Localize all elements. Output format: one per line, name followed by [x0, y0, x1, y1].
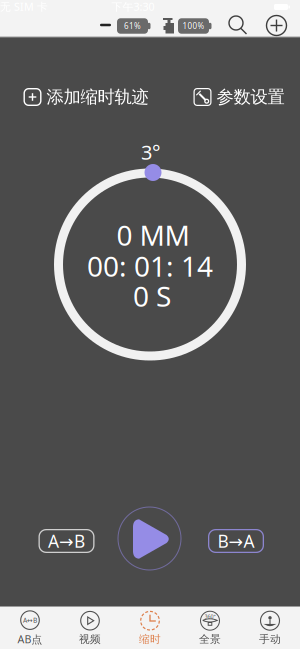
button[interactable]: [117, 506, 181, 570]
button[interactable]: 缩时: [120, 607, 180, 649]
staticText: 3°: [141, 139, 161, 165]
button[interactable]: 视频: [60, 607, 120, 649]
button[interactable]: 手动: [240, 607, 300, 649]
button[interactable]: 360°: [180, 607, 240, 649]
button[interactable]: 添加缩时轨迹: [23, 86, 148, 108]
staticText: 0 S: [133, 277, 171, 315]
staticText: 0 MM: [116, 216, 189, 254]
button[interactable]: B→A: [208, 529, 264, 553]
staticText: 100%: [182, 21, 204, 31]
button[interactable]: 参数设置: [193, 86, 284, 108]
staticText: 无 SIM 卡: [0, 0, 48, 14]
staticText: B→A: [217, 529, 254, 552]
button[interactable]: A↔B: [0, 607, 60, 649]
staticText: 添加缩时轨迹: [46, 86, 148, 108]
button[interactable]: [265, 14, 287, 36]
button[interactable]: A→B: [38, 529, 94, 553]
staticText: A↔B: [23, 616, 37, 625]
staticText: 61%: [124, 21, 141, 31]
staticText: 参数设置: [216, 86, 284, 108]
staticText: 全景: [199, 633, 221, 646]
staticText: 00: 01: 14: [87, 247, 213, 285]
staticText: 下午3:30: [111, 0, 154, 14]
staticText: AB点: [17, 632, 42, 646]
staticText: 视频: [79, 633, 101, 646]
staticText: 360°: [204, 613, 215, 620]
staticText: 缩时: [139, 633, 161, 646]
button[interactable]: [226, 14, 250, 38]
staticText: A→B: [48, 529, 85, 552]
staticText: 手动: [259, 633, 281, 646]
